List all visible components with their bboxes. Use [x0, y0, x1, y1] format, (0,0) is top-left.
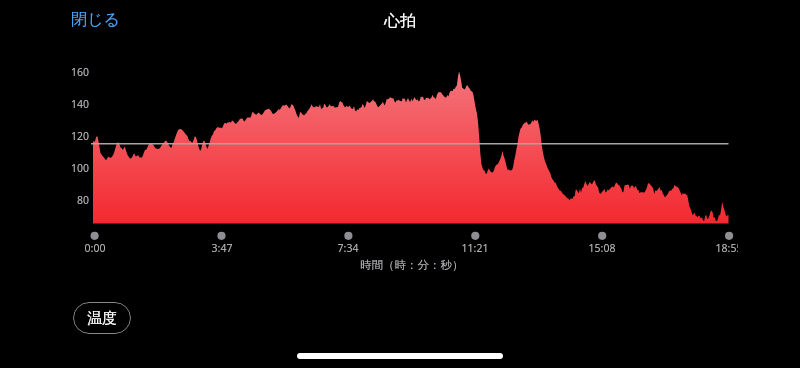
staticText: 15:08	[572, 241, 632, 255]
staticText: 3:47	[192, 241, 252, 255]
staticText: 120	[49, 129, 89, 143]
staticText: 100	[49, 161, 89, 175]
staticText: 160	[49, 65, 89, 79]
staticText: 閉じる	[71, 10, 120, 30]
staticText: 0:00	[65, 241, 125, 255]
button[interactable]: 閉じる	[62, 2, 129, 38]
staticText: 時間（時：分：秒）	[360, 258, 464, 272]
staticText: 7:34	[318, 241, 378, 255]
staticText: 140	[49, 97, 89, 111]
staticText: 18:55	[699, 241, 738, 255]
staticText: 80	[49, 193, 89, 207]
staticText: 温度	[87, 309, 117, 328]
button[interactable]: 温度	[73, 302, 131, 334]
staticText: 心拍	[384, 11, 416, 31]
staticText: 11:21	[445, 241, 505, 255]
